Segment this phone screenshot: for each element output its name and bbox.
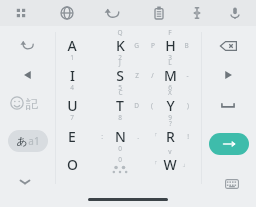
staticText: 8 <box>118 113 122 122</box>
button[interactable]: H <box>146 30 194 60</box>
button[interactable]: I <box>48 60 96 90</box>
staticText: G <box>134 41 139 50</box>
staticText: あ <box>16 134 28 148</box>
staticText: H <box>165 36 176 55</box>
staticText: J <box>119 58 121 67</box>
staticText: U <box>67 96 78 115</box>
button[interactable]: E <box>48 121 96 151</box>
staticText: 0 <box>118 155 122 164</box>
staticText: / <box>151 71 154 80</box>
staticText: - <box>186 71 189 80</box>
button[interactable]: Clipboard <box>149 3 169 23</box>
button[interactable]: M <box>146 60 194 90</box>
button[interactable]: Cursor left <box>17 64 39 86</box>
button[interactable]: Language <box>57 3 77 23</box>
staticText: X <box>168 88 172 97</box>
button[interactable]: Apps <box>11 3 31 23</box>
button[interactable]: N <box>96 121 144 151</box>
staticText: 」 <box>182 160 189 168</box>
button[interactable]: Hide keyboard <box>14 171 36 193</box>
staticText: ( <box>151 101 153 110</box>
button[interactable]: Emoji and symbols <box>10 92 46 114</box>
staticText: 1 <box>70 53 74 62</box>
staticText: 「 <box>151 132 158 140</box>
staticText: P <box>151 41 155 50</box>
staticText: 5 <box>118 83 122 92</box>
button[interactable]: Enter <box>209 133 249 155</box>
staticText: 0 <box>118 144 122 153</box>
button[interactable]: Undo <box>17 34 39 56</box>
staticText: O <box>67 155 78 174</box>
staticText: 6 <box>168 83 172 92</box>
button[interactable]: R <box>146 121 194 151</box>
staticText: 「 <box>151 160 158 168</box>
staticText: . <box>137 132 139 141</box>
staticText: L <box>168 58 172 67</box>
button[interactable]: T <box>96 90 144 120</box>
button[interactable]: Voice input <box>225 3 245 23</box>
staticText: A <box>67 36 77 55</box>
staticText: W <box>163 155 177 174</box>
staticText: 4 <box>70 83 74 92</box>
staticText: Z <box>135 71 139 80</box>
staticText: v <box>168 147 172 156</box>
button[interactable]: W <box>146 149 194 179</box>
staticText: T <box>116 96 124 115</box>
staticText: Y <box>166 96 175 115</box>
staticText: a1 <box>28 134 40 148</box>
button[interactable]: K <box>96 30 144 60</box>
staticText: R <box>166 127 175 146</box>
staticText: F <box>168 28 172 37</box>
staticText: D <box>134 101 139 110</box>
staticText: C <box>118 88 123 97</box>
button[interactable]: Cursor right <box>217 64 239 86</box>
staticText: ) <box>187 101 189 110</box>
button[interactable]: A <box>48 30 96 60</box>
button[interactable]: Y <box>146 90 194 120</box>
button[interactable]: O <box>48 149 96 179</box>
staticText: Q <box>117 28 123 37</box>
button[interactable]: Switch keyboard <box>222 174 242 194</box>
button[interactable]: Space <box>215 92 241 118</box>
staticText: S <box>116 66 124 85</box>
staticText: E <box>68 127 76 146</box>
staticText: 7 <box>70 113 74 122</box>
button[interactable]: Undo <box>103 3 123 23</box>
staticText: ? <box>169 119 172 128</box>
button[interactable]: S <box>96 60 144 90</box>
staticText: B <box>184 41 189 50</box>
button[interactable]: Emoji <box>96 149 144 179</box>
staticText: K <box>116 36 125 55</box>
button[interactable]: Text cursor <box>187 3 207 23</box>
staticText: 記 <box>26 96 38 111</box>
staticText: M <box>164 66 177 85</box>
button[interactable]: Backspace <box>216 34 240 58</box>
staticText: 9 <box>168 113 172 122</box>
staticText: I <box>70 66 75 85</box>
staticText: 3 <box>168 53 172 62</box>
staticText: 2 <box>118 53 122 62</box>
staticText: N <box>115 127 126 146</box>
staticText: ! <box>187 132 189 141</box>
button[interactable]: U <box>48 90 96 120</box>
button[interactable]: あ <box>8 130 48 152</box>
staticText: : <box>101 132 103 141</box>
